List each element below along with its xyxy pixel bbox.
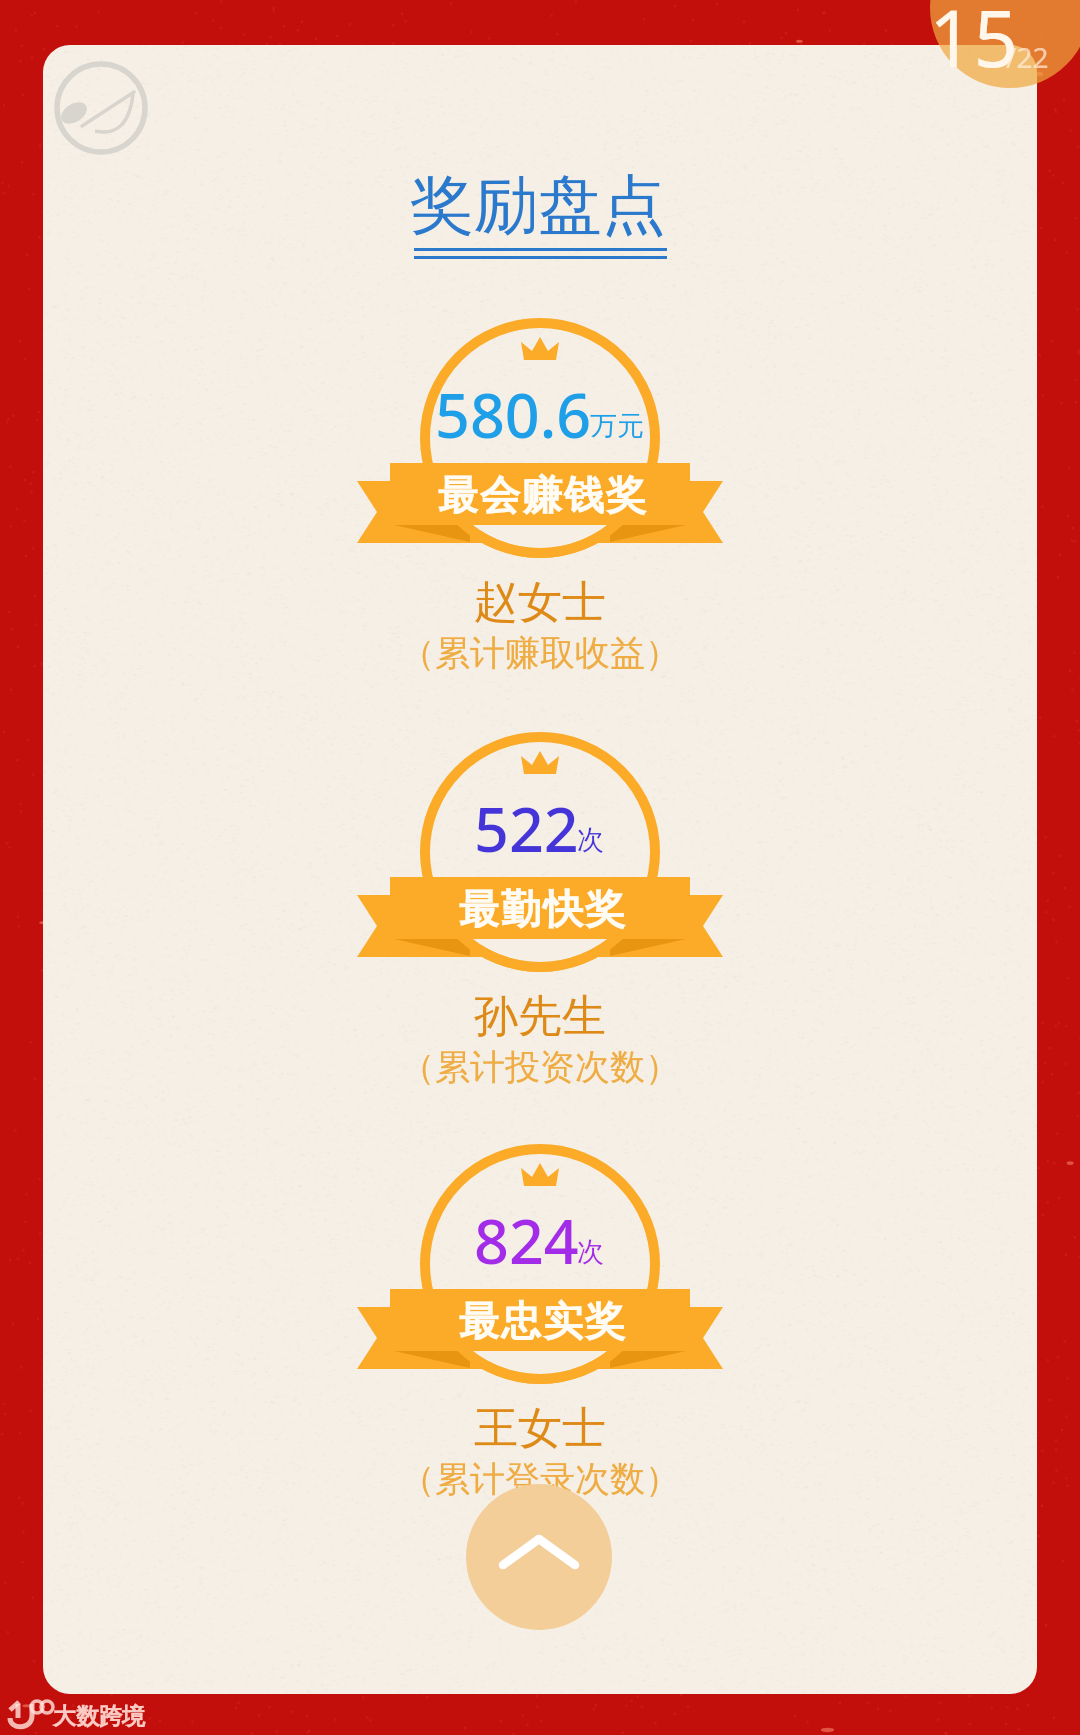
staticText: （累计赚取收益） [400, 631, 680, 675]
staticText: 奖励盘点 [410, 165, 666, 246]
button[interactable]: Back to top [466, 1484, 612, 1630]
staticText: 万元 [590, 409, 644, 443]
staticText: 孙先生 [474, 989, 606, 1044]
staticText: 580.6 [435, 373, 592, 456]
staticText: （累计登录次数） [400, 1457, 680, 1501]
staticText: 824 [474, 1199, 579, 1282]
button[interactable]: 最会赚钱奖 赵女士 580.6万元 [343, 293, 737, 678]
staticText: 15 [929, 0, 1019, 90]
button[interactable]: App logo [53, 60, 149, 156]
staticText: 次 [577, 1235, 604, 1269]
staticText: 522 [474, 787, 579, 870]
staticText: 王女士 [474, 1401, 606, 1456]
button[interactable]: Page 15 of 22 [930, 0, 1080, 88]
staticText: 次 [577, 823, 604, 857]
staticText: （累计投资次数） [400, 1045, 680, 1089]
staticText: 赵女士 [474, 575, 606, 630]
staticText: 最会赚钱奖 [437, 470, 647, 520]
staticText: 最勤快奖 [458, 884, 626, 934]
staticText: /22 [1006, 38, 1049, 76]
staticText: 最忠实奖 [458, 1296, 626, 1346]
button[interactable]: 最勤快奖 孙先生 522次 [343, 707, 737, 1092]
staticText: 大数跨境 [53, 1702, 145, 1731]
button[interactable]: 最忠实奖 王女士 824次 [343, 1119, 737, 1504]
